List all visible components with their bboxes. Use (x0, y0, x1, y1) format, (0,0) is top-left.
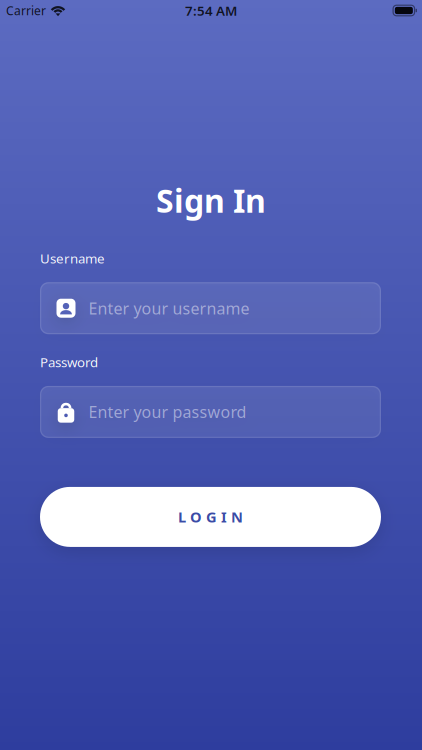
button[interactable]: Enter your password (40, 386, 381, 438)
staticText: 7:54 AM (185, 2, 237, 19)
button[interactable]: Enter your username (40, 282, 381, 334)
button[interactable]: LOGIN (40, 487, 381, 547)
staticText: Sign In (156, 179, 266, 221)
staticText: Password (40, 353, 98, 371)
staticText: Username (40, 249, 105, 267)
staticText: Enter your username (88, 298, 249, 319)
staticText: Carrier (6, 2, 46, 18)
staticText: LOGIN (178, 507, 243, 527)
staticText: Enter your password (88, 401, 246, 422)
